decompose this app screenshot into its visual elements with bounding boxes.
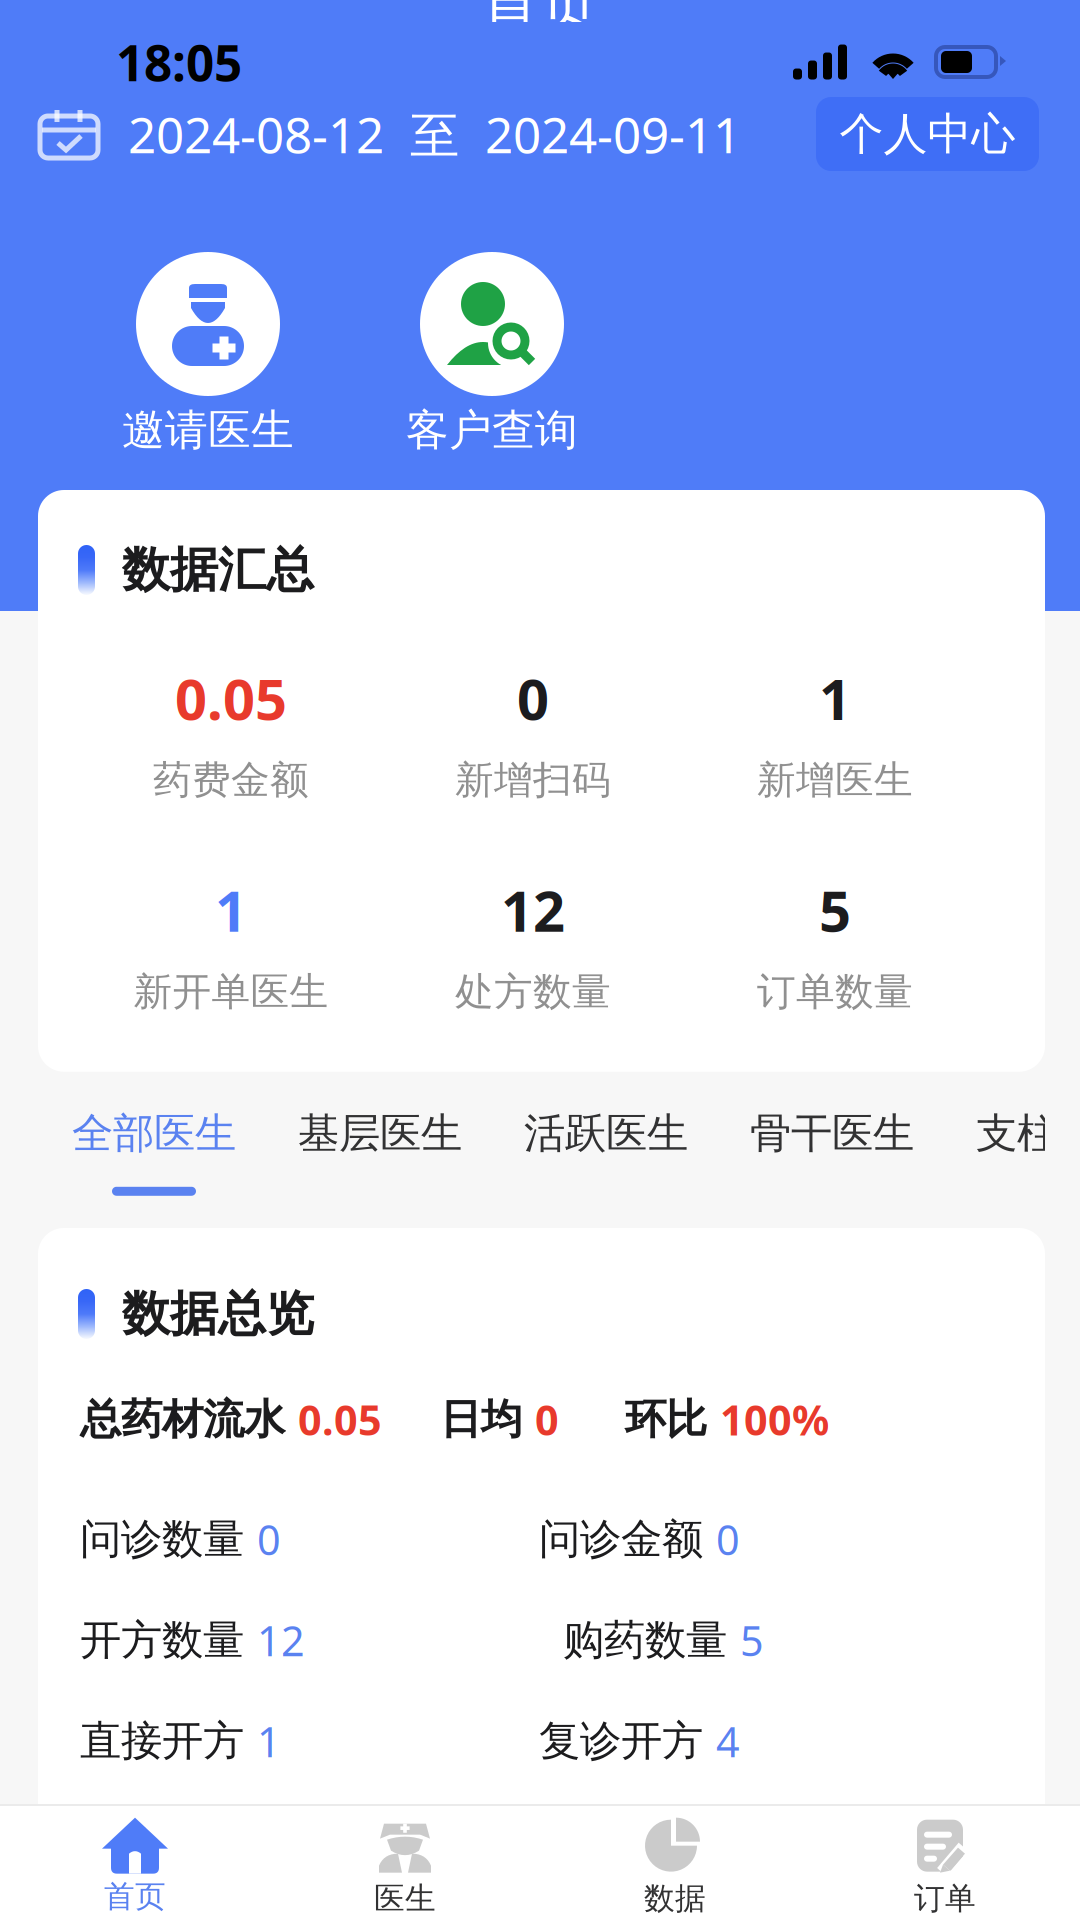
staticText: 订单数量 [757,968,913,1016]
button[interactable]: 支柱医生 [976,1108,1080,1159]
staticText: 4 [716,1714,740,1769]
button[interactable]: 客户查询 [406,252,578,456]
staticText: 开方数量 [80,1615,244,1666]
staticText: 5 [740,1613,764,1668]
staticText: 0 [535,1392,559,1447]
staticText: 0 [257,1512,281,1567]
staticText: 新增医生 [757,756,913,804]
staticText: 数据 [644,1880,706,1917]
button[interactable]: 骨干医生 [750,1108,914,1159]
staticText: 0.05 [175,661,287,735]
staticText: 活跃医生 [524,1108,688,1159]
staticText: 0.05 [298,1392,382,1447]
button[interactable]: 首页 [0,1804,270,1920]
button[interactable]: 活跃医生 [524,1108,688,1159]
staticText: 5 [819,873,851,947]
staticText: 日均 [440,1394,522,1445]
staticText: 12 [257,1613,305,1668]
staticText: 直接开方 [80,1716,244,1766]
button[interactable]: 数据 [540,1804,810,1920]
staticText: 首页 [104,1878,166,1915]
staticText: 总药材流水 [80,1394,285,1445]
staticText: 客户查询 [406,404,578,456]
staticText: 数据汇总 [122,540,314,599]
staticText: 购药数量 [563,1615,727,1666]
staticText: 复诊开方 [539,1716,703,1766]
staticText: 医生 [374,1880,436,1917]
staticText: 0 [517,661,549,735]
button[interactable]: 2024-08-12 至 2024-09-11 [40,101,741,167]
staticText: 个人中心 [839,107,1015,161]
staticText: 处方数量 [455,968,611,1016]
staticText: 支柱医生 [976,1108,1080,1159]
staticText: 邀请医生 [122,404,294,456]
staticText: 18:05 [116,29,242,95]
staticText: 问诊金额 [539,1514,703,1565]
staticText: 基层医生 [298,1108,462,1159]
button[interactable]: 全部医生 [72,1108,236,1196]
button[interactable]: 基层医生 [298,1108,462,1159]
staticText: 1 [257,1714,281,1769]
staticText: 新增扫码 [455,756,611,804]
staticText: 全部医生 [72,1108,236,1159]
staticText: 新开单医生 [133,968,328,1016]
staticText: 环比 [625,1394,707,1445]
staticText: 药费金额 [153,756,309,804]
staticText: 12 [501,873,565,947]
staticText: 2024-08-12 至 2024-09-11 [128,101,741,167]
staticText: 骨干医生 [750,1108,914,1159]
staticText: 0 [716,1512,740,1567]
staticText: 订单 [914,1880,976,1917]
button[interactable]: 邀请医生 [122,252,294,456]
staticText: 1 [215,873,247,947]
staticText: 首页 [481,0,599,42]
button[interactable]: 医生 [270,1804,540,1920]
button[interactable]: 订单 [810,1804,1080,1920]
staticText: 问诊数量 [80,1514,244,1565]
staticText: 100% [720,1392,829,1447]
staticText: 数据总览 [122,1284,314,1343]
button[interactable]: 个人中心 [816,97,1039,171]
staticText: 1 [819,661,851,735]
